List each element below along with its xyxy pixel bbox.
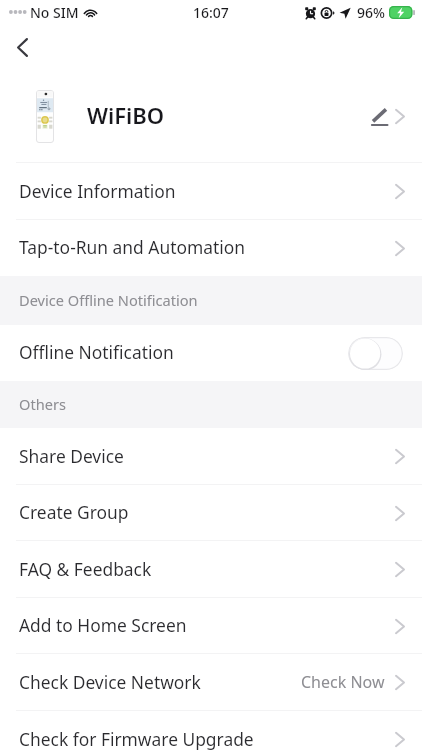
button[interactable]: Check Device Network — [0, 654, 422, 711]
staticText: 16:07 — [193, 3, 229, 22]
staticText: Share Device — [19, 444, 124, 468]
staticText: Device Offline Notification — [19, 290, 198, 310]
staticText: Create Group — [19, 500, 129, 524]
button[interactable]: Tap-to-Run and Automation — [0, 220, 422, 276]
staticText: 96% — [357, 3, 385, 22]
button[interactable]: Check for Firmware Upgrade — [0, 711, 422, 750]
staticText: Offline Notification — [19, 340, 174, 364]
button[interactable]: Create Group — [0, 485, 422, 541]
staticText: Check Now — [301, 671, 385, 693]
button[interactable]: Add to Home Screen — [0, 598, 422, 654]
button[interactable]: Offline Notification — [0, 325, 422, 381]
button[interactable]: Offline Notification toggle — [348, 337, 403, 370]
staticText: Check Device Network — [19, 670, 201, 694]
staticText: No SIM — [30, 3, 79, 22]
button[interactable]: Rename device — [370, 108, 389, 126]
button[interactable]: Device Information — [0, 163, 422, 220]
staticText: Add to Home Screen — [19, 613, 187, 637]
staticText: Others — [19, 394, 66, 414]
staticText: Check for Firmware Upgrade — [19, 727, 254, 750]
button[interactable]: Back — [0, 25, 44, 69]
button[interactable]: FAQ & Feedback — [0, 541, 422, 598]
staticText: Device Information — [19, 179, 176, 203]
button[interactable]: Share Device — [0, 428, 422, 485]
staticText: WiFiBO — [87, 100, 165, 130]
staticText: FAQ & Feedback — [19, 557, 152, 581]
staticText: Tap-to-Run and Automation — [19, 235, 245, 259]
button[interactable]: WiFiBO — [0, 70, 422, 163]
